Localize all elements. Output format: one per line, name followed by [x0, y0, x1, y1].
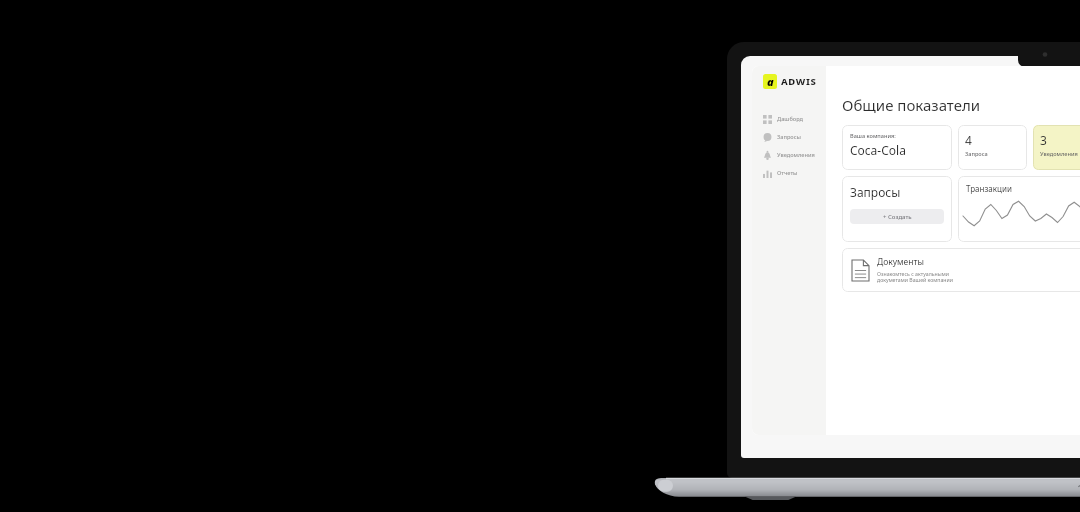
button[interactable]: Транзакции	[958, 176, 1080, 242]
staticText: Ознакомтесь с актуальными докуметами Ваш…	[877, 270, 953, 284]
button[interactable]: 3	[1033, 125, 1080, 170]
button[interactable]: Ваша компания:	[842, 125, 952, 170]
staticText: Запросы	[777, 133, 801, 141]
staticText: Coca-Cola	[850, 142, 906, 158]
staticText: a	[767, 74, 774, 89]
button[interactable]: Дашборд	[752, 110, 826, 128]
button[interactable]: Уведомления	[752, 146, 826, 164]
button[interactable]: Запросы	[752, 128, 826, 146]
staticText: Дашборд	[777, 115, 804, 123]
button[interactable]: Документы	[842, 248, 1080, 292]
staticText: Транзакции	[966, 183, 1012, 194]
staticText: ADWIS	[781, 75, 817, 88]
button[interactable]: + Создать	[850, 209, 944, 224]
staticText: Уведомления	[1040, 150, 1078, 158]
button[interactable]: Запросы	[842, 176, 952, 242]
staticText: Ваша компания:	[850, 132, 896, 140]
button[interactable]: Отчеты	[752, 164, 826, 182]
staticText: + Создать	[883, 213, 912, 221]
button[interactable]: ADWIS home	[763, 74, 817, 89]
staticText: Документы	[877, 256, 924, 268]
staticText: Запросы	[850, 184, 901, 200]
staticText: Отчеты	[777, 169, 798, 177]
staticText: 3	[1040, 132, 1047, 148]
staticText: Запроса	[965, 150, 988, 158]
staticText: 4	[965, 132, 972, 148]
staticText: Общие показатели	[842, 95, 981, 115]
button[interactable]: 4	[958, 125, 1027, 170]
staticText: Уведомления	[777, 151, 815, 159]
